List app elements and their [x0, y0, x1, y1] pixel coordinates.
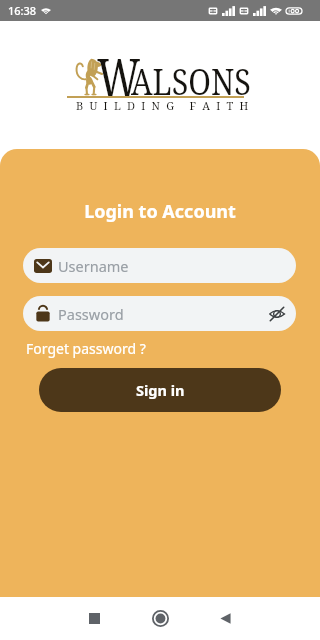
staticText: B U I L D I N G F A I T H — [76, 98, 250, 113]
staticText: Login to Account — [0, 199, 320, 224]
staticText: ALSONS — [131, 57, 252, 106]
button[interactable]: Recents — [78, 602, 110, 634]
staticText: Sign in — [136, 380, 185, 400]
button[interactable]: Username — [23, 248, 296, 283]
button[interactable]: Back — [209, 602, 241, 634]
button[interactable]: Show password — [261, 298, 293, 330]
staticText: W — [97, 40, 141, 112]
staticText: Username — [58, 256, 129, 276]
button[interactable]: Forget password ? — [26, 339, 146, 358]
staticText: 16:38 — [8, 3, 37, 18]
button[interactable]: Password — [23, 296, 296, 331]
staticText: Password — [58, 304, 124, 324]
button[interactable]: Sign in — [39, 368, 281, 412]
button[interactable]: Home — [144, 602, 176, 634]
